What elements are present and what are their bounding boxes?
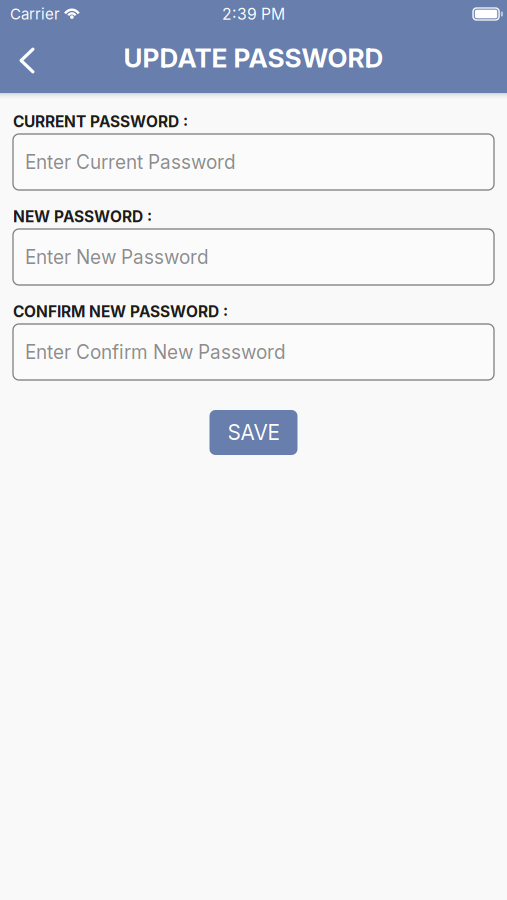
button[interactable]: Back [1,35,53,85]
staticText: Carrier [10,5,60,23]
staticText: SAVE [227,420,279,445]
staticText: UPDATE PASSWORD [123,42,383,74]
staticText: NEW PASSWORD : [13,207,152,226]
staticText: Enter Current Password [25,150,236,173]
button[interactable]: SAVE [209,410,297,455]
staticText: 2:39 PM [222,4,285,23]
staticText: CURRENT PASSWORD : [13,112,188,131]
staticText: Enter New Password [25,245,209,268]
staticText: CONFIRM NEW PASSWORD : [13,302,228,321]
staticText: Enter Confirm New Password [25,340,286,363]
